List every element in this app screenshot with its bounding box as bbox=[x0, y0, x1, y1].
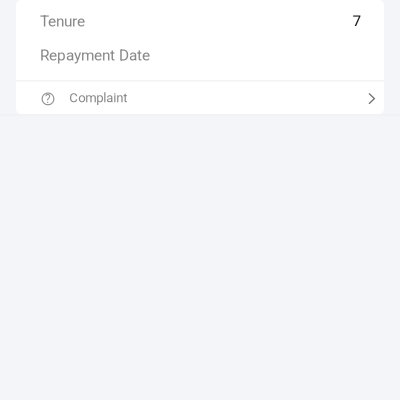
staticText: Tenure bbox=[40, 12, 85, 30]
staticText: 7 bbox=[352, 12, 361, 30]
staticText: Repayment Date bbox=[40, 46, 150, 64]
button[interactable]: ? bbox=[16, 82, 384, 114]
staticText: Complaint bbox=[69, 90, 127, 105]
staticText: ? bbox=[45, 92, 51, 106]
